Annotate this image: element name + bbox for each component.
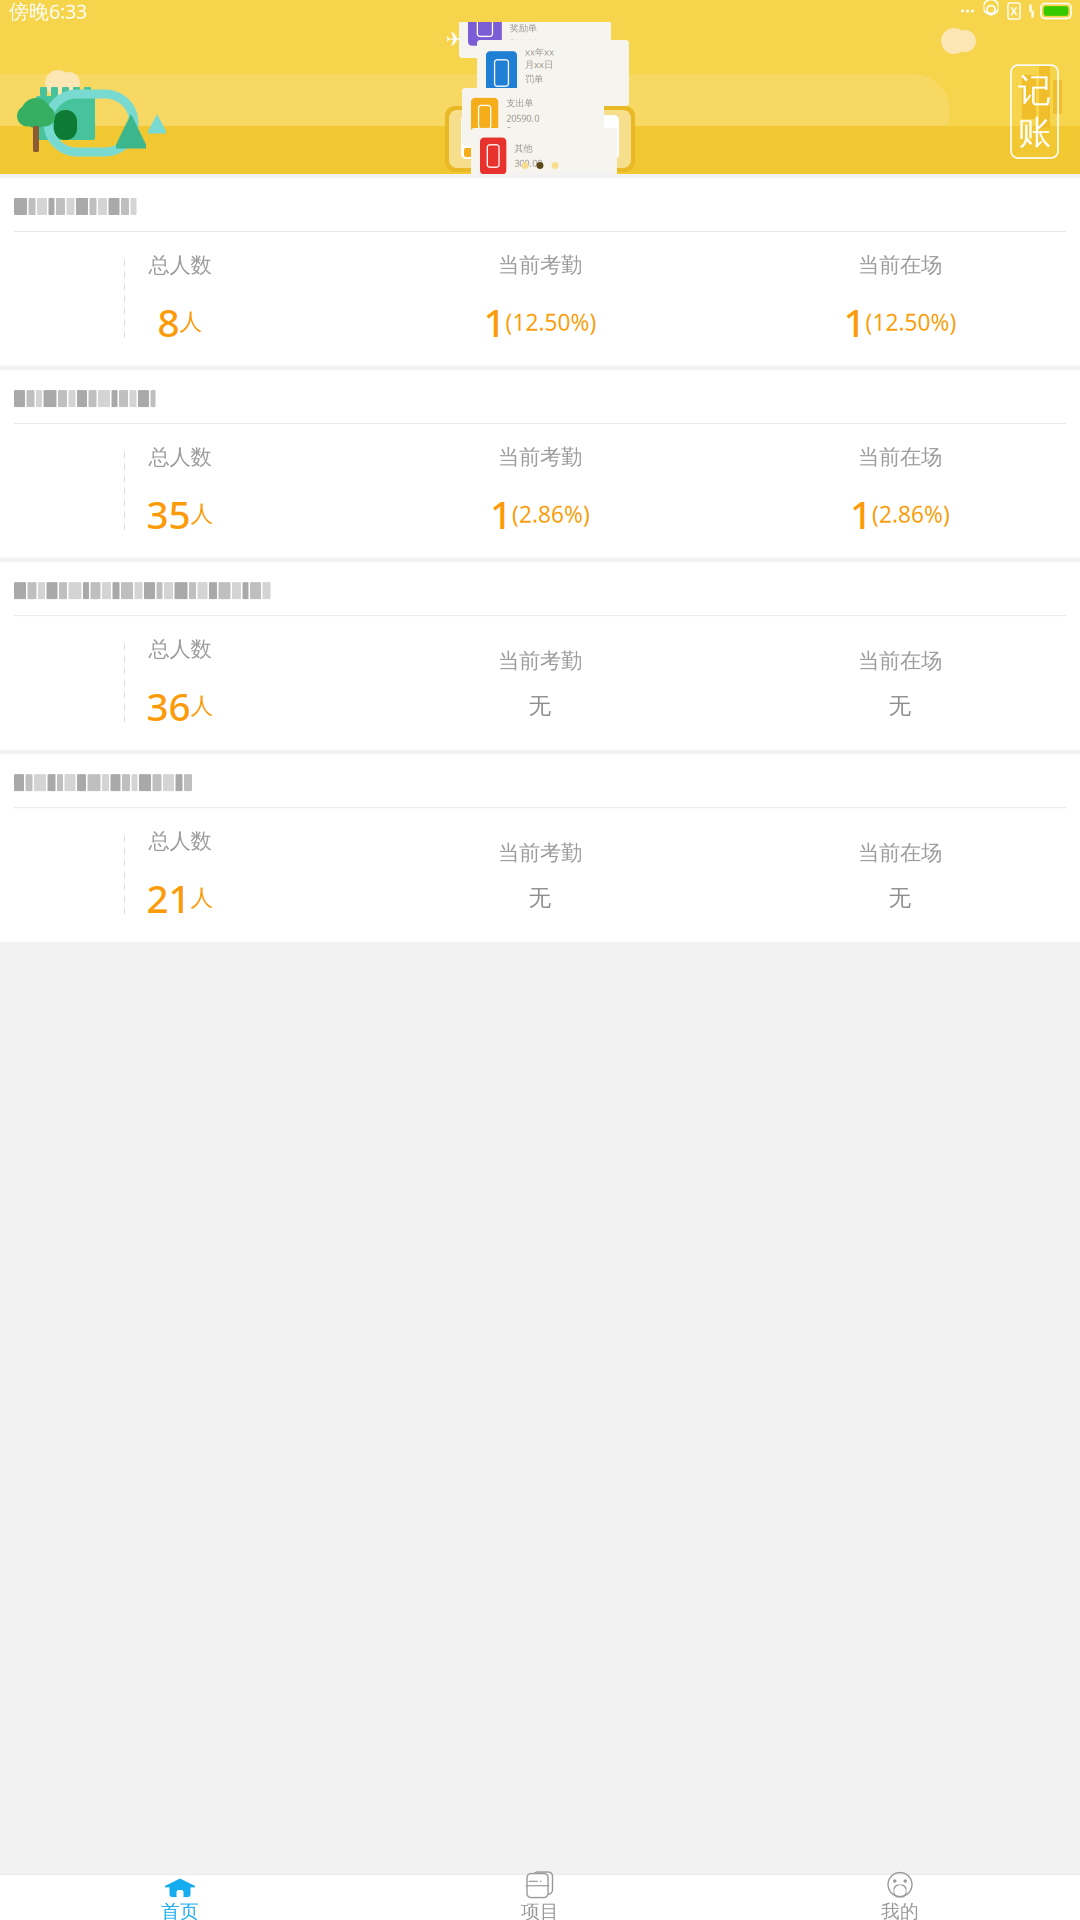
button[interactable]: 首页 <box>0 1868 360 1920</box>
button[interactable]: 总人数 <box>0 754 1080 942</box>
staticText: 1 <box>850 488 872 540</box>
staticText: 8 <box>157 296 179 347</box>
staticText: (12.50%) <box>505 307 596 337</box>
staticText: 当前在场 <box>858 444 942 470</box>
staticText: 傍晚6:33 <box>9 0 87 24</box>
staticText: 当前在场 <box>858 840 942 866</box>
staticText: 100.00 <box>525 88 553 100</box>
staticText: 21 <box>146 872 190 924</box>
staticText: 35 <box>146 488 190 540</box>
button[interactable]: 总人数 <box>0 370 1080 558</box>
staticText: (2.86%) <box>872 499 950 529</box>
staticText: 支出单 <box>506 97 533 109</box>
staticText: 项目 <box>521 1900 559 1920</box>
staticText: 当前在场 <box>858 648 942 674</box>
staticText: 36 <box>146 680 190 732</box>
staticText: 总人数 <box>148 444 211 470</box>
staticText: 20590.00 <box>506 112 539 137</box>
staticText: (2.86%) <box>512 499 590 529</box>
staticText: 总人数 <box>148 252 211 278</box>
staticText: 无 <box>528 692 551 720</box>
staticText: 记 <box>1018 70 1051 111</box>
staticText: 我的 <box>881 1900 919 1920</box>
staticText: (12.50%) <box>865 307 956 337</box>
staticText: 人 <box>179 308 202 336</box>
staticText: 首页 <box>161 1900 199 1920</box>
staticText: 总人数 <box>148 636 211 662</box>
staticText: 500.00 <box>510 37 538 49</box>
staticText: 人 <box>190 692 213 720</box>
staticText: 无 <box>888 692 911 720</box>
staticText: X <box>1010 4 1017 18</box>
staticText: 人 <box>190 500 213 528</box>
staticText: 无 <box>528 884 551 912</box>
staticText: ✈ <box>445 28 462 51</box>
button[interactable]: 总人数 <box>0 562 1080 750</box>
staticText: 罚单 <box>525 73 543 85</box>
button[interactable]: 总人数 <box>0 178 1080 366</box>
button[interactable]: 我的 <box>720 1868 1080 1920</box>
staticText: 当前考勤 <box>498 444 582 470</box>
staticText: 当前在场 <box>858 252 942 278</box>
staticText: xx年xx月xx日 <box>525 46 554 70</box>
staticText: 总人数 <box>148 828 211 854</box>
staticText: 无 <box>888 884 911 912</box>
staticText: 1 <box>843 296 865 347</box>
staticText: 当前考勤 <box>498 840 582 866</box>
staticText: 当前考勤 <box>498 648 582 674</box>
staticText: 其他 <box>514 143 532 154</box>
staticText: 1 <box>490 488 512 540</box>
staticText: 300.00 <box>514 157 542 169</box>
staticText: 当前考勤 <box>498 252 582 278</box>
staticText: 账 <box>1018 112 1051 153</box>
button[interactable]: 项目 <box>360 1868 720 1920</box>
staticText: 奖励单 <box>510 22 537 34</box>
staticText: 人 <box>190 884 213 912</box>
staticText: 1 <box>483 296 505 347</box>
